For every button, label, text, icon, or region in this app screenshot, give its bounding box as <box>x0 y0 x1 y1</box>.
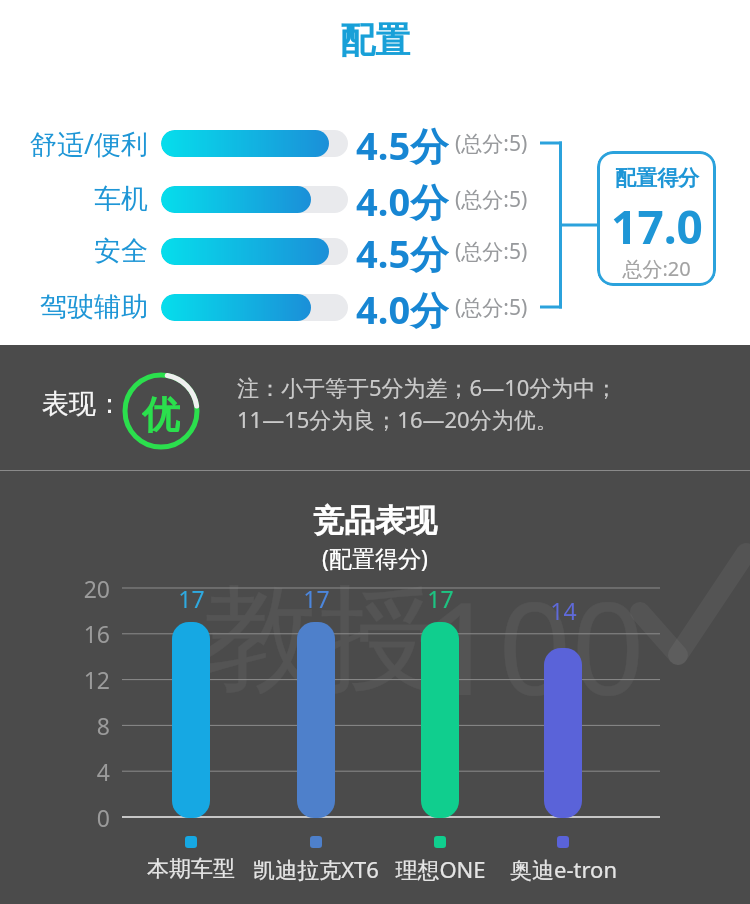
staticText: (总分:5) <box>455 237 528 266</box>
button[interactable] <box>421 622 459 818</box>
button[interactable] <box>597 151 716 286</box>
staticText: 100 <box>425 558 645 698</box>
staticText: 4.5分 <box>356 119 449 167</box>
staticText: 配置得分 <box>615 165 699 191</box>
staticText: 奥迪e-tron <box>510 854 617 884</box>
button[interactable] <box>161 130 348 157</box>
staticText: (总分:5) <box>455 185 528 214</box>
staticText: 车机 <box>94 182 148 216</box>
button[interactable] <box>161 186 348 213</box>
staticText: 4.0分 <box>356 283 449 331</box>
staticText: (配置得分) <box>322 542 428 572</box>
staticText: 注：小于等于5分为差；6—10分为中； <box>237 372 618 402</box>
staticText: (总分:5) <box>455 129 528 158</box>
staticText: 11—15分为良；16—20分为优。 <box>237 404 558 434</box>
staticText: 本期车型 <box>147 855 235 883</box>
staticText: 4.0分 <box>356 175 449 223</box>
button[interactable] <box>172 622 210 818</box>
staticText: 凯迪拉克XT6 <box>253 854 379 884</box>
staticText: 理想ONE <box>395 854 486 884</box>
staticText: 4 <box>96 756 110 786</box>
button[interactable] <box>161 294 348 321</box>
staticText: 17 <box>427 583 454 613</box>
staticText: 4.5分 <box>356 227 449 275</box>
button[interactable] <box>297 622 335 818</box>
staticText: 教授 <box>203 566 435 694</box>
button[interactable] <box>544 648 582 818</box>
staticText: 17 <box>178 583 205 613</box>
staticText: 配置 <box>340 18 410 62</box>
staticText: 14 <box>550 595 577 625</box>
staticText: 竞品表现 <box>313 501 437 540</box>
staticText: 舒适/便利 <box>29 125 148 162</box>
staticText: 17 <box>303 583 330 613</box>
staticText: 驾驶辅助 <box>40 290 148 324</box>
staticText: 安全 <box>94 234 148 268</box>
staticText: 总分:20 <box>622 255 691 281</box>
staticText: (总分:5) <box>455 293 528 322</box>
staticText: 8 <box>96 710 110 740</box>
staticText: 17.0 <box>611 195 703 253</box>
staticText: 0 <box>96 802 110 832</box>
staticText: 12 <box>83 664 110 694</box>
staticText: 20 <box>83 573 110 603</box>
staticText: 16 <box>83 618 110 648</box>
staticText: 表现： <box>42 387 123 421</box>
staticText: 优 <box>142 391 180 435</box>
button[interactable] <box>161 238 348 265</box>
